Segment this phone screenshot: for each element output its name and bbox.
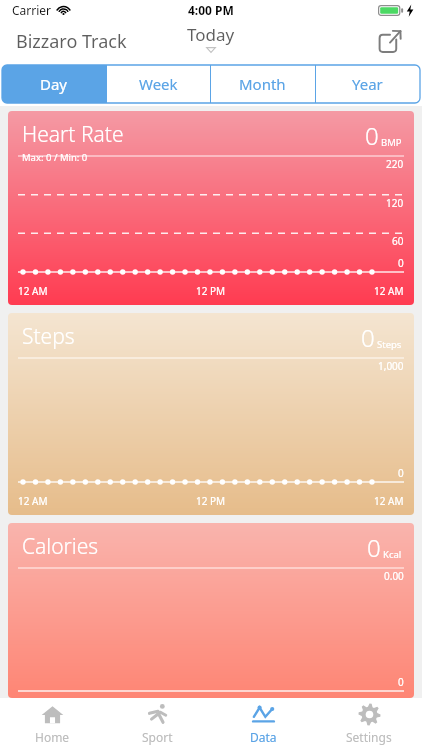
button[interactable]: Year: [315, 65, 420, 103]
button[interactable]: Settings: [316, 698, 422, 750]
staticText: Sport: [142, 729, 173, 745]
staticText: Calories: [22, 532, 99, 561]
staticText: 0: [398, 675, 404, 689]
staticText: Settings: [346, 729, 392, 745]
staticText: 60: [392, 234, 404, 248]
staticText: BMP: [381, 136, 402, 149]
staticText: 12 AM: [18, 284, 48, 298]
button[interactable]: Data: [210, 698, 316, 750]
staticText: 0: [398, 256, 404, 270]
staticText: Steps: [22, 322, 75, 351]
staticText: Day: [40, 74, 68, 94]
button[interactable]: Home: [0, 698, 105, 750]
staticText: 0.00: [384, 569, 404, 583]
staticText: Max: 0 / Min: 0: [22, 151, 88, 164]
staticText: Today: [187, 23, 235, 46]
staticText: 0: [361, 321, 375, 354]
staticText: 1,000: [378, 359, 404, 373]
staticText: 12 PM: [196, 284, 226, 298]
button[interactable]: Share: [374, 25, 406, 57]
staticText: Week: [139, 74, 178, 94]
button[interactable]: Month: [210, 65, 315, 103]
button[interactable]: Steps: [8, 313, 414, 515]
staticText: Kcal: [383, 548, 402, 561]
staticText: 4:00 PM: [188, 2, 234, 18]
staticText: Home: [35, 729, 70, 745]
button[interactable]: Week: [106, 65, 210, 103]
staticText: 0: [398, 466, 404, 480]
staticText: Year: [352, 74, 383, 94]
staticText: 12 AM: [374, 284, 404, 298]
button[interactable]: Day: [2, 65, 106, 103]
staticText: Month: [239, 74, 286, 94]
staticText: Carrier: [12, 2, 52, 18]
button[interactable]: Sport: [105, 698, 210, 750]
button[interactable]: Today: [187, 23, 235, 53]
staticText: Steps: [377, 338, 402, 351]
button[interactable]: Bizzaro Track: [16, 29, 127, 54]
staticText: 120: [386, 196, 404, 210]
staticText: 0: [365, 119, 379, 152]
staticText: Heart Rate: [22, 120, 124, 149]
staticText: 0: [367, 531, 381, 564]
staticText: 220: [386, 157, 404, 171]
staticText: Bizzaro Track: [16, 29, 127, 54]
button[interactable]: Calories: [8, 523, 414, 698]
staticText: 12 AM: [374, 494, 404, 508]
staticText: 12 AM: [18, 494, 48, 508]
button[interactable]: Heart Rate: [8, 111, 414, 305]
staticText: 12 PM: [196, 494, 226, 508]
staticText: Data: [250, 729, 277, 745]
